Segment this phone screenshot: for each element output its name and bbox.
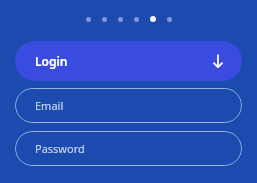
button[interactable] xyxy=(86,17,91,22)
button[interactable]: Email xyxy=(15,88,242,123)
button[interactable] xyxy=(167,17,172,22)
button[interactable]: Login xyxy=(15,41,242,81)
staticText: Password xyxy=(35,141,85,156)
button[interactable]: Download xyxy=(207,50,229,72)
button[interactable]: Password xyxy=(15,131,242,166)
button[interactable] xyxy=(150,16,156,22)
staticText: Login xyxy=(35,53,68,69)
button[interactable] xyxy=(134,17,139,22)
button[interactable] xyxy=(118,17,123,22)
staticText: Email xyxy=(35,98,64,113)
button[interactable] xyxy=(102,17,107,22)
